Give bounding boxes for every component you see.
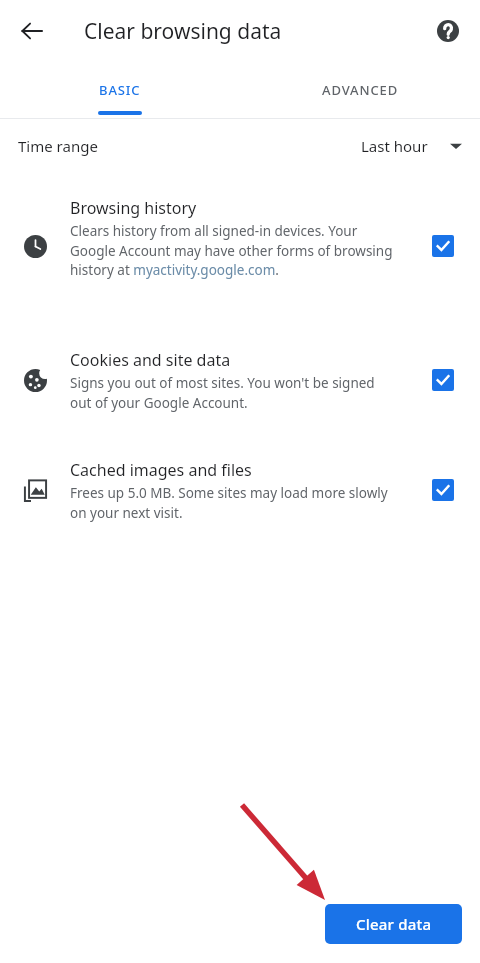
button[interactable]: Cached images and files [0, 457, 480, 541]
staticText: Browsing history [70, 197, 197, 219]
button[interactable]: Checked [432, 369, 454, 391]
staticText: Clear browsing data [84, 17, 282, 46]
button[interactable]: Cookies and site data [0, 347, 480, 431]
staticText: Cookies and site data [70, 349, 231, 371]
staticText: Cached images and files [70, 459, 252, 481]
button[interactable]: Checked [432, 235, 454, 257]
button[interactable]: BASIC [0, 62, 240, 118]
button[interactable]: Checked [432, 479, 454, 501]
staticText: Clear data [356, 914, 432, 934]
staticText: Signs you out of most sites. You won't b… [70, 374, 396, 412]
staticText: BASIC [99, 81, 141, 99]
staticText: Last hour [361, 136, 428, 156]
staticText: Frees up 5.0 MB. Some sites may load mor… [70, 484, 396, 522]
button[interactable]: Back [10, 9, 54, 53]
staticText: ADVANCED [322, 81, 399, 99]
button[interactable]: Browsing history [0, 195, 480, 321]
staticText: Time range [18, 136, 98, 156]
button[interactable]: ADVANCED [240, 62, 480, 118]
button[interactable]: Help [426, 9, 470, 53]
button[interactable]: Time range [0, 119, 480, 173]
button[interactable]: Clear data [325, 904, 462, 944]
staticText: Clears history from all signed-in device… [70, 222, 396, 279]
